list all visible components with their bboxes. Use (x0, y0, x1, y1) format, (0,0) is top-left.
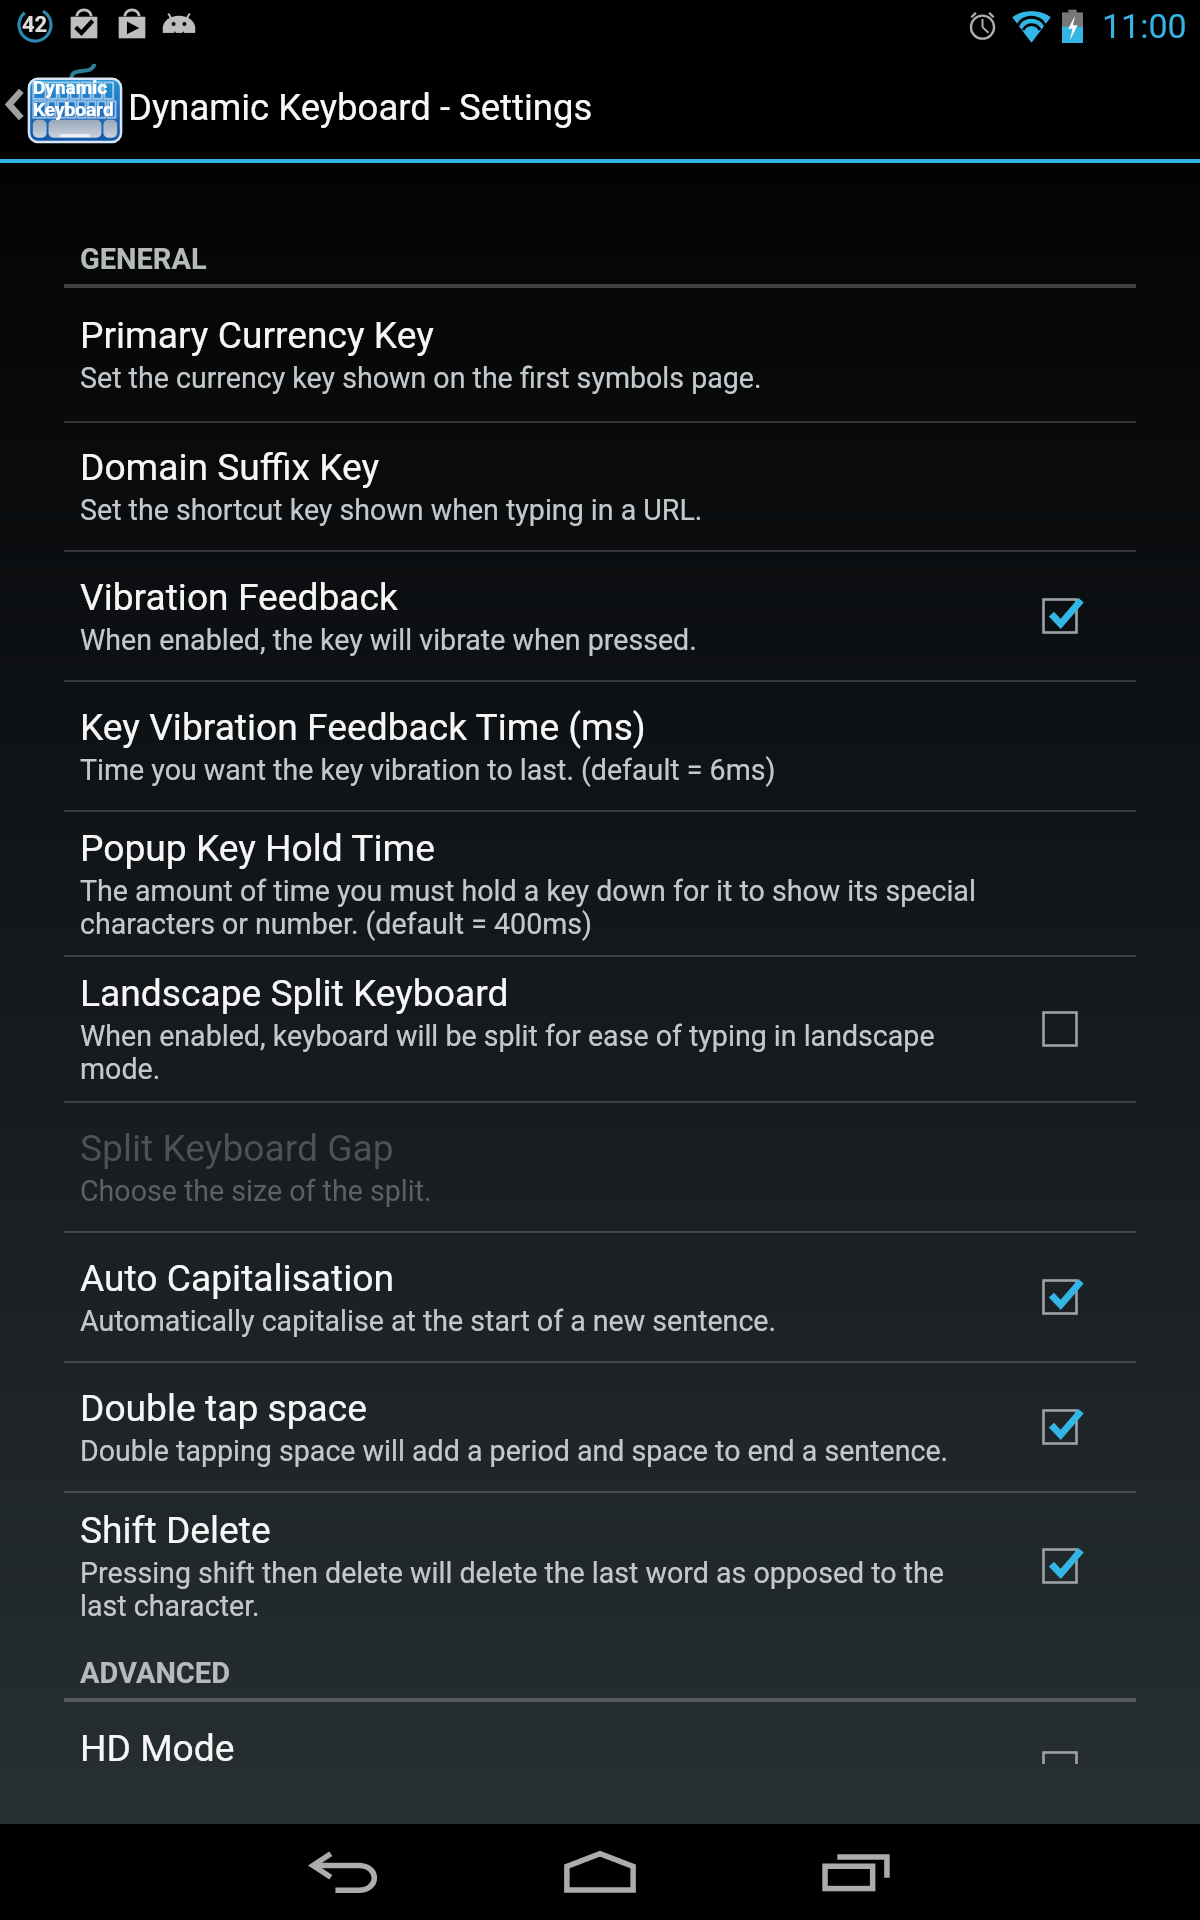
staticText: The amount of time you must hold a key d… (80, 875, 976, 941)
staticText: Key Vibration Feedback Time (ms) (80, 704, 646, 749)
button[interactable]: Shift Delete (0, 1493, 1200, 1639)
staticText: HD Mode (80, 1725, 235, 1764)
staticText: Set the currency key shown on the first … (80, 362, 762, 395)
staticText: When enabled, the key will vibrate when … (80, 624, 697, 657)
staticText: 11:00 (1102, 6, 1187, 46)
button[interactable]: Vibration Feedback (0, 552, 1200, 680)
button[interactable]: Double tap space (0, 1363, 1200, 1491)
button[interactable]: Recents (777, 1830, 937, 1914)
button[interactable]: Split Keyboard Gap (0, 1103, 1200, 1231)
staticText: Shift Delete (80, 1507, 271, 1552)
staticText: 42 (22, 12, 48, 38)
button[interactable]: Primary Currency Key (0, 288, 1200, 421)
staticText: Vibration Feedback (80, 574, 398, 619)
staticText: Double tap space (80, 1385, 367, 1430)
staticText: When enabled, keyboard will be split for… (80, 1020, 935, 1086)
staticText: Dynamic Keyboard - Settings (128, 85, 593, 129)
button[interactable]: Unchecked (1030, 999, 1090, 1059)
staticText: Set the shortcut key shown when typing i… (80, 494, 703, 527)
staticText: Dynamic (33, 76, 108, 98)
staticText: GENERAL (80, 242, 207, 276)
button[interactable]: Landscape Split Keyboard (0, 957, 1200, 1101)
button[interactable]: Checked (1030, 586, 1090, 646)
staticText: Auto Capitalisation (80, 1255, 395, 1300)
button[interactable]: Domain Suffix Key (0, 423, 1200, 550)
staticText: Time you want the key vibration to last.… (80, 754, 776, 787)
button[interactable]: Auto Capitalisation (0, 1233, 1200, 1361)
button[interactable]: Popup Key Hold Time (0, 812, 1200, 955)
button[interactable]: Dynamic (0, 50, 1200, 159)
button[interactable]: Key Vibration Feedback Time (ms) (0, 682, 1200, 810)
staticText: Primary Currency Key (80, 312, 434, 357)
button[interactable]: Checked (1030, 1536, 1090, 1596)
button[interactable]: Unchecked (1030, 1739, 1090, 1764)
staticText: Split Keyboard Gap (80, 1125, 394, 1170)
button[interactable]: Back (264, 1830, 424, 1914)
staticText: Popup Key Hold Time (80, 825, 435, 870)
staticText: Keyboard (33, 98, 114, 120)
staticText: Automatically capitalise at the start of… (80, 1305, 777, 1338)
button[interactable]: HD Mode (0, 1702, 1200, 1764)
staticText: ADVANCED (80, 1656, 230, 1690)
staticText: Pressing shift then delete will delete t… (80, 1557, 945, 1623)
staticText: Landscape Split Keyboard (80, 970, 509, 1015)
button[interactable]: Home (520, 1830, 680, 1914)
staticText: Choose the size of the split. (80, 1175, 432, 1208)
staticText: Double tapping space will add a period a… (80, 1435, 949, 1468)
staticText: Domain Suffix Key (80, 444, 380, 489)
button[interactable]: Checked (1030, 1267, 1090, 1327)
button[interactable]: Checked (1030, 1397, 1090, 1457)
